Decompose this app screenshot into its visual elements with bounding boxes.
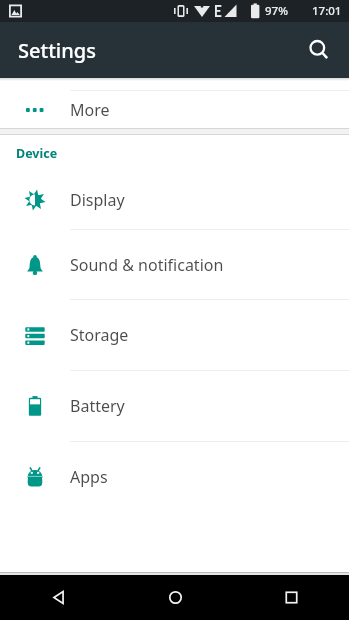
- staticText: 97%: [265, 3, 288, 19]
- staticText: Settings: [18, 37, 96, 64]
- staticText: Battery: [70, 395, 125, 417]
- staticText: Storage: [70, 324, 129, 346]
- staticText: 17:01: [312, 3, 342, 19]
- staticText: Display: [70, 189, 125, 211]
- button[interactable]: Battery: [0, 371, 349, 441]
- button[interactable]: Sound & notification: [0, 230, 349, 299]
- staticText: Sound & notification: [70, 254, 224, 276]
- button[interactable]: More: [0, 91, 349, 128]
- button[interactable]: Storage: [0, 300, 349, 370]
- button[interactable]: Search: [295, 26, 343, 74]
- staticText: More: [70, 99, 110, 121]
- button[interactable]: Display: [0, 171, 349, 229]
- button[interactable]: Apps: [0, 442, 349, 512]
- button[interactable]: Back: [0, 575, 117, 620]
- button[interactable]: Recent apps: [233, 575, 349, 620]
- staticText: Apps: [70, 466, 108, 488]
- button[interactable]: Home: [117, 575, 233, 620]
- staticText: Device: [16, 145, 58, 162]
